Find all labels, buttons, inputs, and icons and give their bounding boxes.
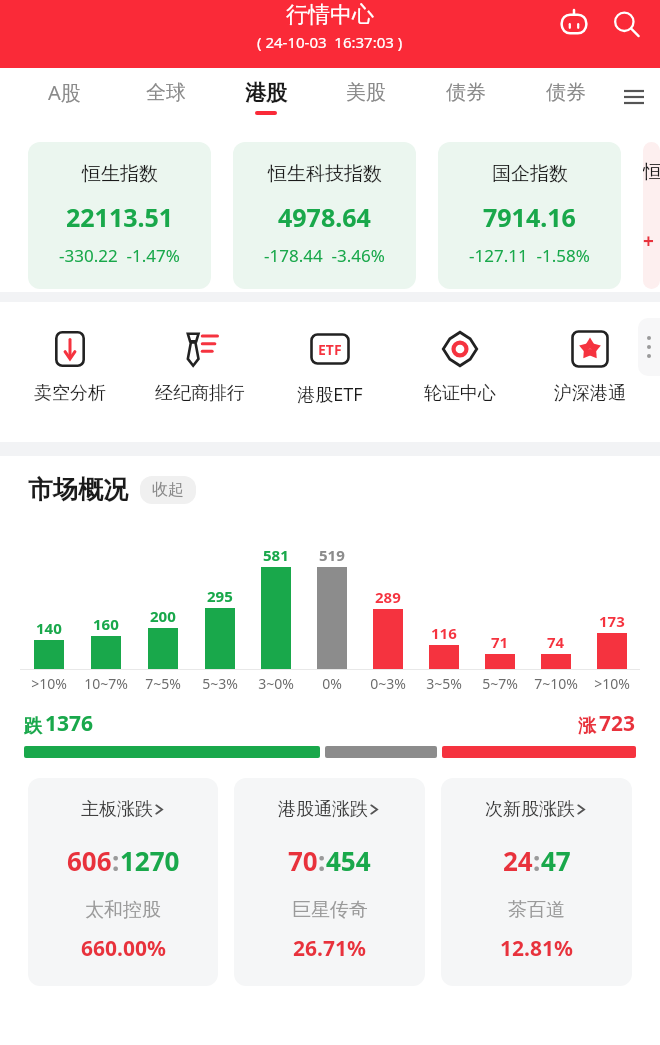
staticText: 5~7% [482, 674, 518, 693]
button[interactable]: 国企指数 [438, 142, 621, 289]
staticText: 71 [491, 632, 509, 652]
staticText: >10% [31, 674, 67, 693]
staticText: 美股 [346, 80, 386, 105]
button[interactable]: 港股 [216, 68, 316, 126]
staticText: 47 [541, 843, 571, 878]
staticText: 173 [599, 611, 625, 631]
staticText: 70 [288, 843, 318, 878]
staticText: 沪深港通 [554, 382, 626, 405]
staticText: 723 [599, 709, 636, 738]
staticText: 116 [431, 623, 457, 643]
staticText: : [112, 843, 120, 878]
staticText: 港股通涨跌 [278, 798, 368, 821]
button[interactable]: More [638, 318, 660, 376]
staticText: -178.44 -3.46% [264, 244, 385, 267]
staticText: 12.81% [500, 934, 573, 963]
staticText: : [533, 843, 541, 878]
staticText: 581 [263, 545, 289, 565]
staticText: 太和控股 [85, 898, 161, 922]
button[interactable]: More tabs [616, 79, 652, 115]
button[interactable]: 经纪商排行 [140, 328, 260, 405]
staticText: 660.00% [81, 934, 166, 963]
staticText: 恒 [643, 160, 660, 184]
staticText: 24 [503, 843, 533, 878]
staticText: 200 [150, 606, 176, 626]
button[interactable]: 债券 [416, 68, 516, 126]
staticText: A股 [48, 79, 81, 106]
staticText: 606 [67, 843, 112, 878]
staticText: 行情中心 [286, 1, 374, 29]
staticText: 289 [375, 587, 401, 607]
staticText: : [318, 843, 326, 878]
staticText: 454 [326, 843, 371, 878]
staticText: 519 [319, 545, 345, 565]
staticText: 主板涨跌 [81, 798, 153, 821]
staticText: 26.71% [293, 934, 366, 963]
staticText: 74 [547, 632, 565, 652]
staticText: 7~10% [534, 674, 578, 693]
button[interactable]: 沪深港通 [530, 328, 650, 405]
button[interactable]: 港股通涨跌 [234, 778, 425, 986]
staticText: 4978.64 [278, 200, 371, 234]
button[interactable]: 恒 [643, 142, 660, 289]
staticText: 跌 [24, 715, 42, 738]
staticText: 1376 [45, 709, 94, 738]
staticText: 295 [207, 586, 233, 606]
staticText: 恒生指数 [82, 162, 158, 186]
staticText: 1270 [120, 843, 180, 878]
staticText: 市场概况 [28, 474, 128, 505]
button[interactable]: A股 [14, 68, 115, 126]
staticText: 轮证中心 [424, 382, 496, 405]
staticText: 7914.16 [483, 200, 576, 234]
button[interactable]: 恒生科技指数 [233, 142, 416, 289]
staticText: >10% [594, 674, 630, 693]
button[interactable]: ETF [270, 328, 390, 407]
staticText: 0% [322, 674, 342, 693]
staticText: 经纪商排行 [155, 382, 245, 405]
staticText: 10~7% [84, 674, 128, 693]
staticText: 债券 [546, 80, 586, 105]
staticText: 港股 [245, 80, 287, 106]
button[interactable]: 美股 [316, 68, 416, 126]
staticText: 22113.51 [66, 200, 174, 234]
staticText: -330.22 -1.47% [59, 244, 180, 267]
button[interactable]: 恒生指数 [28, 142, 211, 289]
button[interactable]: 收起 [152, 480, 184, 500]
staticText: 涨 [578, 715, 596, 738]
staticText: 次新股涨跌 [485, 798, 575, 821]
staticText: ETF [318, 340, 342, 359]
staticText: 0~3% [370, 674, 406, 693]
staticText: 港股ETF [297, 382, 363, 407]
staticText: 债券 [446, 80, 486, 105]
button[interactable]: 卖空分析 [10, 328, 130, 405]
staticText: 3~0% [258, 674, 294, 693]
button[interactable]: 全球 [115, 68, 216, 126]
staticText: 7~5% [145, 674, 181, 693]
staticText: ( 24-10-03 16:37:03 ) [257, 32, 403, 52]
button[interactable]: Search [606, 4, 646, 44]
staticText: 卖空分析 [34, 382, 106, 405]
button[interactable]: 主板涨跌 [28, 778, 218, 986]
button[interactable]: Robot assistant [554, 4, 594, 44]
button[interactable]: 次新股涨跌 [441, 778, 632, 986]
staticText: + [643, 228, 654, 254]
staticText: 巨星传奇 [292, 898, 368, 922]
staticText: 160 [93, 614, 119, 634]
staticText: 恒生科技指数 [268, 162, 382, 186]
staticText: 140 [36, 618, 62, 638]
staticText: 5~3% [202, 674, 238, 693]
staticText: 茶百道 [508, 898, 565, 922]
staticText: 国企指数 [492, 162, 568, 186]
button[interactable]: 债券 [516, 68, 616, 126]
staticText: -127.11 -1.58% [469, 244, 590, 267]
button[interactable]: 轮证中心 [400, 328, 520, 405]
staticText: 3~5% [426, 674, 462, 693]
staticText: 全球 [146, 80, 186, 105]
staticText: 收起 [152, 480, 184, 500]
